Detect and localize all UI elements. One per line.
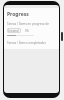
button[interactable]: Iniciando bbox=[7, 28, 21, 33]
other: Power button bbox=[61, 32, 63, 41]
staticText: Progress bbox=[7, 11, 29, 18]
staticText: Tareas / Ítems completados bbox=[7, 41, 46, 45]
button[interactable]: Progress bbox=[4, 8, 59, 49]
staticText: Iniciando bbox=[8, 29, 20, 33]
staticText: 0% bbox=[25, 29, 29, 33]
staticText: Tareas / Ítems en progreso de lectura bbox=[7, 22, 56, 26]
